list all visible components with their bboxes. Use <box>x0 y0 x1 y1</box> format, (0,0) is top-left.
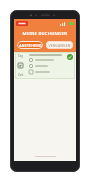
staticText: Zeit <box>18 73 24 77</box>
button[interactable]: ANSTEHEND <box>17 41 43 49</box>
staticText: ANSTEHEND <box>19 43 42 48</box>
button[interactable]: Bestätigt <box>67 54 73 60</box>
staticText: MEINE BUCHUNGEN <box>22 31 68 37</box>
staticText: Tag <box>18 54 24 58</box>
button[interactable]: Tag <box>15 52 75 79</box>
button[interactable]: VERGANGEN <box>46 41 73 49</box>
staticText: VERGANGEN <box>48 43 71 48</box>
